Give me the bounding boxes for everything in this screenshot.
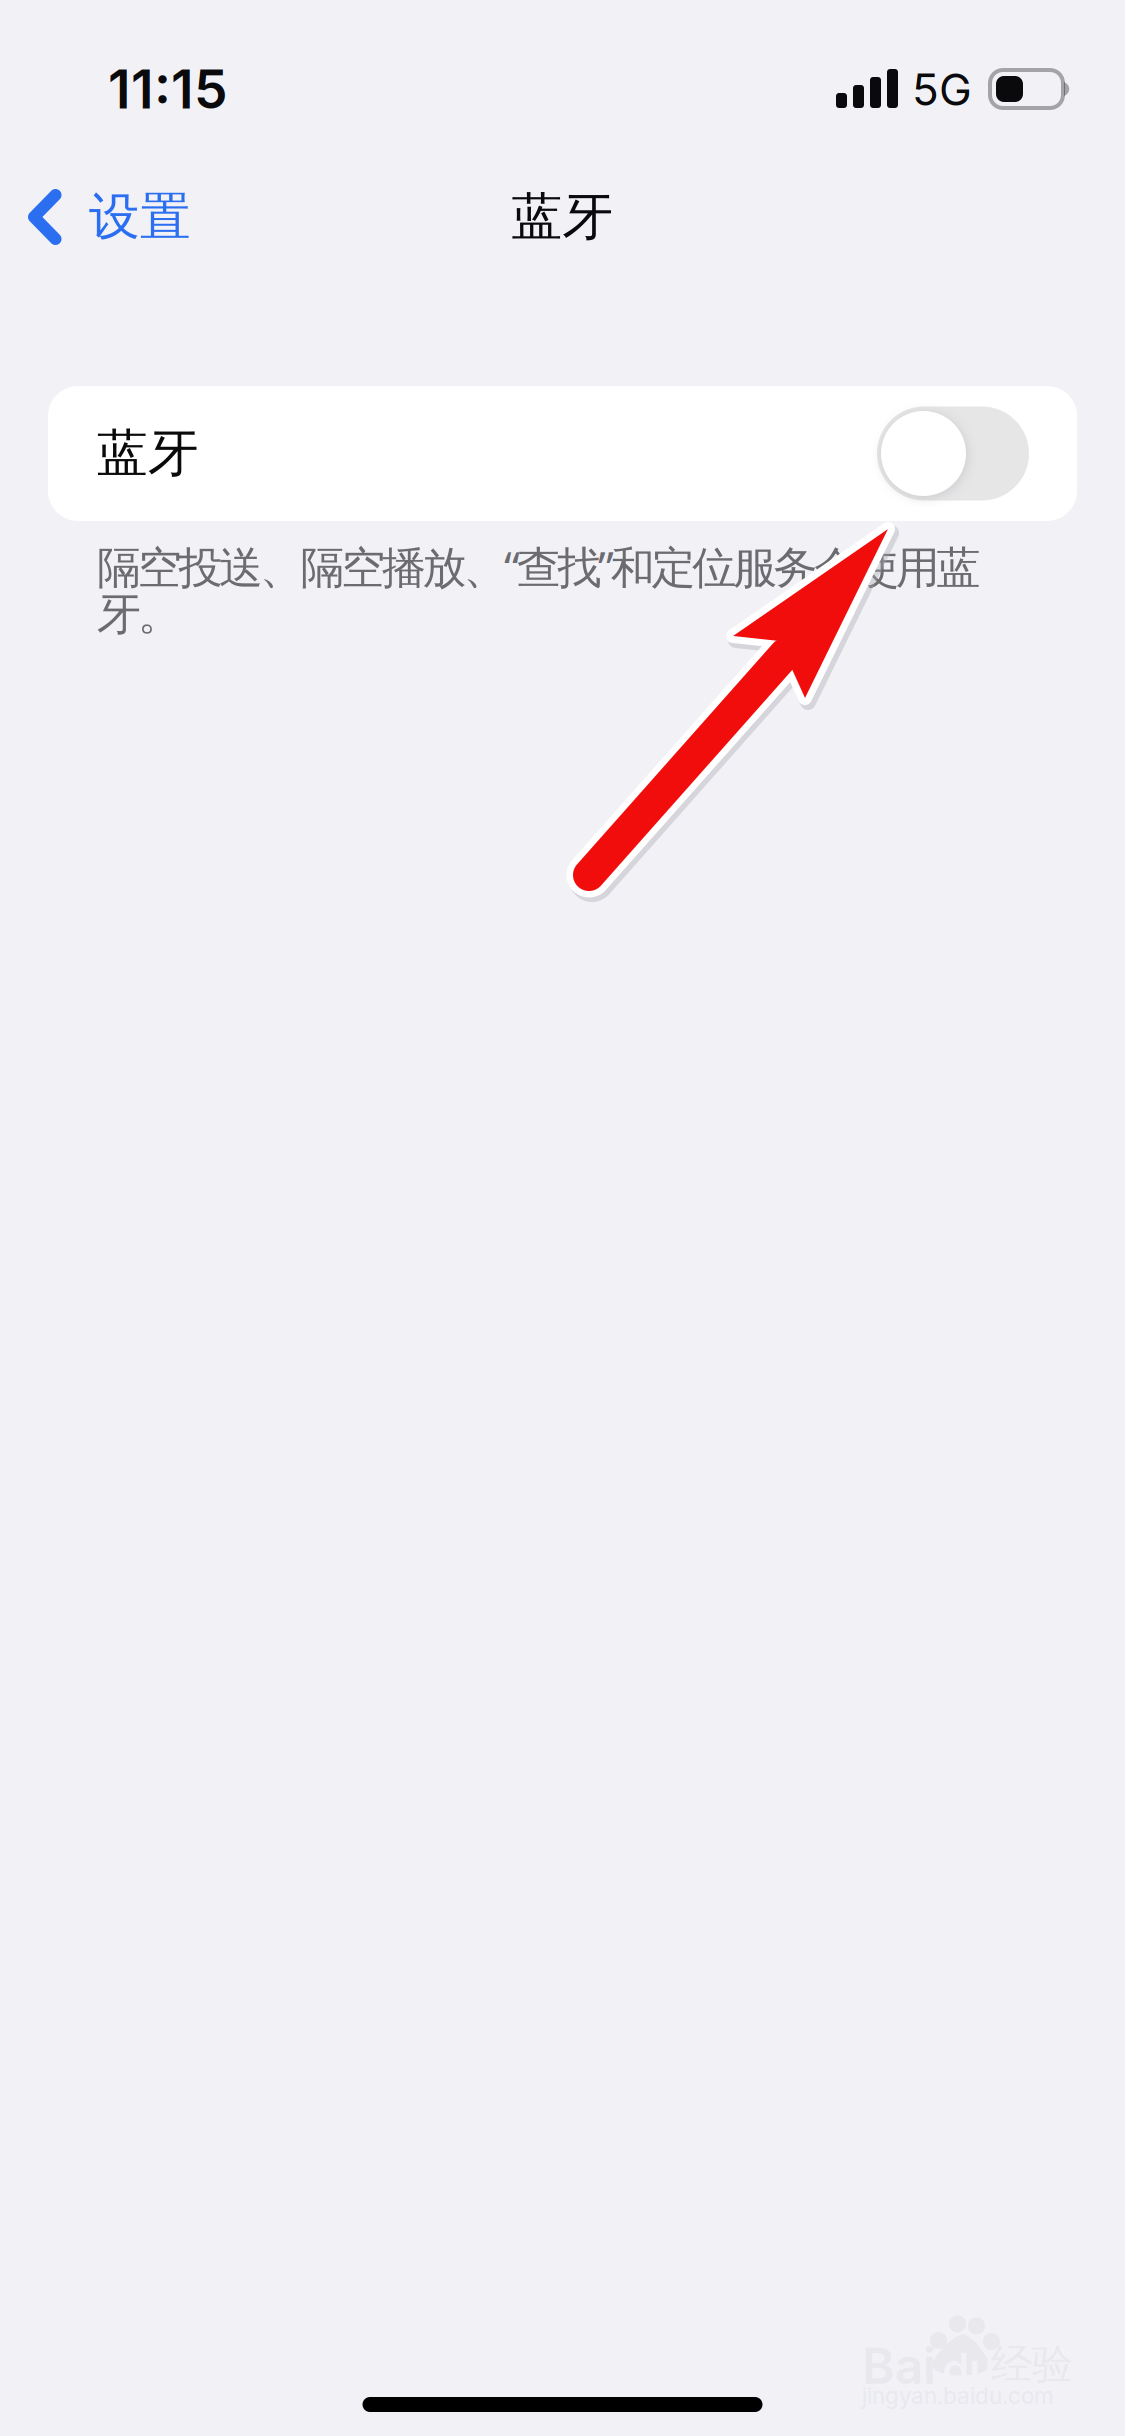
staticText: jingyan.baidu.com [862,2382,1054,2409]
staticText: 经验 [991,2339,1073,2390]
staticText: 蓝牙 [511,186,613,248]
button[interactable]: 蓝牙 [48,386,1077,521]
staticText: Bai [862,2336,936,2396]
staticText: 设置 [89,186,191,248]
button[interactable]: 设置 [0,172,215,262]
staticText: 5G [912,63,972,116]
staticText: 蓝牙 [97,422,199,485]
staticText: 11:15 [108,57,228,121]
staticText: du [942,2342,996,2395]
staticText: 隔空投送、隔空播放、“查找”和定位服务会使用蓝 牙。 [97,537,980,641]
